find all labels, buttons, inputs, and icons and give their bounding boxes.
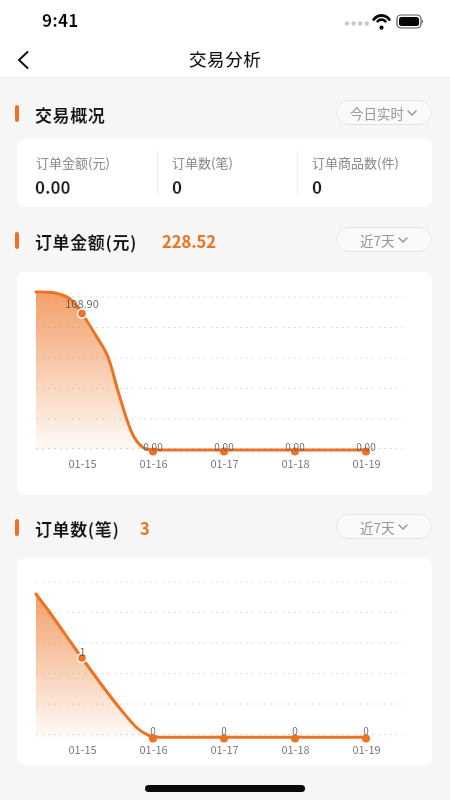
staticText: 01-19 <box>352 741 381 757</box>
staticText: 订单数(笔) <box>172 153 233 172</box>
staticText: 0.00 <box>214 439 234 453</box>
button[interactable]: 今日实时 <box>336 100 432 125</box>
staticText: 0 <box>221 723 227 737</box>
staticText: 108.90 <box>65 295 99 311</box>
staticText: 01-17 <box>210 455 239 471</box>
staticText: 订单金额(元) <box>36 153 110 172</box>
staticText: 订单商品数(件) <box>312 153 399 172</box>
staticText: 今日实时 <box>350 103 404 123</box>
button[interactable]: 近7天 <box>336 227 432 252</box>
button[interactable]: 近7天 <box>336 514 432 539</box>
staticText: 01-15 <box>68 741 97 757</box>
staticText: 订单金额(元) <box>35 229 138 254</box>
staticText: 3 <box>140 516 150 540</box>
staticText: 0.00 <box>143 439 163 453</box>
staticText: 9:41 <box>42 7 79 32</box>
staticText: 01-15 <box>68 455 97 471</box>
staticText: 01-16 <box>139 741 168 757</box>
staticText: 0 <box>363 723 369 737</box>
staticText: 0.00 <box>356 439 376 453</box>
staticText: 0 <box>172 174 183 199</box>
staticText: 0.00 <box>35 174 71 199</box>
staticText: 订单数(笔) <box>35 516 120 541</box>
staticText: 近7天 <box>360 230 395 250</box>
staticText: 01-18 <box>281 741 310 757</box>
staticText: 0 <box>292 723 298 737</box>
staticText: 228.52 <box>162 229 217 253</box>
staticText: 0.00 <box>285 439 305 453</box>
staticText: 交易分析 <box>189 46 262 71</box>
button[interactable] <box>8 46 38 74</box>
staticText: 0 <box>150 723 156 737</box>
staticText: 交易概况 <box>35 102 106 127</box>
staticText: 1 <box>79 643 86 659</box>
staticText: 01-19 <box>352 455 381 471</box>
staticText: 01-17 <box>210 741 239 757</box>
staticText: 0 <box>312 174 323 199</box>
staticText: 近7天 <box>360 517 395 537</box>
staticText: 01-16 <box>139 455 168 471</box>
staticText: 01-18 <box>281 455 310 471</box>
